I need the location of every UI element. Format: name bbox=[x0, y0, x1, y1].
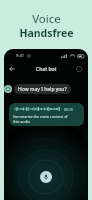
staticText: Handsfree bbox=[19, 26, 74, 40]
staticText: How may I help you? bbox=[18, 86, 67, 93]
button[interactable]: Microphone bbox=[40, 171, 52, 183]
staticText: Chat bot bbox=[36, 66, 57, 73]
staticText: 00:16 bbox=[64, 107, 73, 112]
button[interactable]: Back bbox=[6, 63, 17, 74]
staticText: Summarize the main content of this audio bbox=[13, 114, 68, 124]
staticText: 9:41 bbox=[16, 53, 24, 58]
button[interactable]: Profile bbox=[73, 63, 84, 74]
staticText: Voice bbox=[32, 11, 61, 27]
